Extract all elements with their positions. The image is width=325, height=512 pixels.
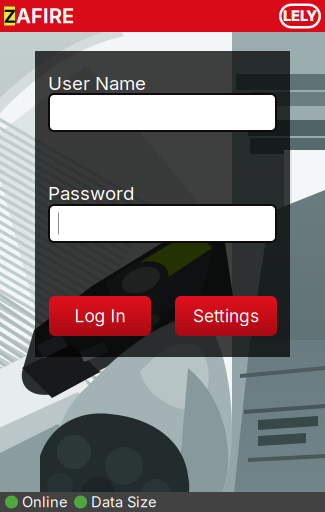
button[interactable]: Log In: [49, 296, 151, 336]
staticText: Log In: [74, 305, 125, 326]
staticText: AFIRE: [16, 4, 74, 28]
staticText: Password: [48, 182, 134, 205]
staticText: LELY: [283, 7, 317, 25]
staticText: User Name: [48, 72, 146, 95]
staticText: Z: [3, 5, 15, 27]
staticText: Settings: [193, 305, 259, 326]
staticText: Data Size: [91, 493, 157, 511]
button[interactable]: Settings: [175, 296, 277, 336]
staticText: Online: [22, 493, 68, 511]
